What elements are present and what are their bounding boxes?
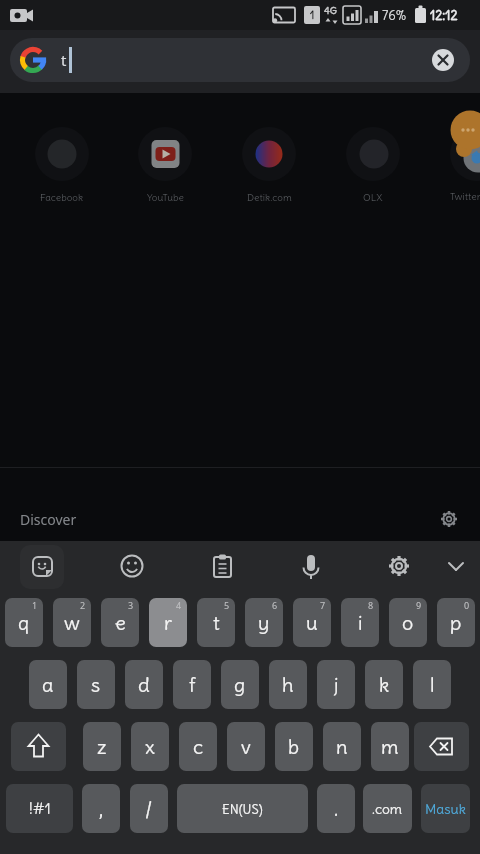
staticText: EN(US) <box>222 801 263 817</box>
staticText: YouTube <box>147 191 184 204</box>
staticText: u <box>306 610 318 635</box>
staticText: j <box>334 672 339 697</box>
staticText: k <box>379 672 390 697</box>
button[interactable] <box>112 547 152 587</box>
button[interactable]: a <box>29 660 67 709</box>
staticText: , <box>99 796 104 821</box>
staticText: 8 <box>368 599 374 611</box>
staticText: b <box>288 734 300 759</box>
staticText: 4G <box>324 4 337 17</box>
button[interactable] <box>291 547 331 587</box>
staticText: Detik.com <box>247 191 292 204</box>
button[interactable] <box>436 547 476 587</box>
button[interactable]: !#1 <box>6 784 73 833</box>
button[interactable]: q <box>5 598 43 647</box>
button[interactable]: l <box>413 660 451 709</box>
staticText: t <box>213 610 220 635</box>
staticText: a <box>42 672 54 697</box>
button[interactable]: y <box>245 598 283 647</box>
button[interactable]: EN(US) <box>177 784 308 833</box>
button[interactable]: b <box>275 722 313 771</box>
staticText: w <box>64 610 80 635</box>
button[interactable]: . <box>317 784 355 833</box>
button[interactable]: d <box>125 660 163 709</box>
staticText: m <box>381 734 399 759</box>
button[interactable]: r <box>149 598 187 647</box>
staticText: . <box>334 796 339 821</box>
button[interactable]: j <box>317 660 355 709</box>
staticText: n <box>336 734 348 759</box>
button[interactable]: Masuk <box>421 784 470 833</box>
staticText: / <box>145 796 153 821</box>
button[interactable]: m <box>371 722 409 771</box>
button[interactable]: c <box>179 722 217 771</box>
button[interactable]: k <box>365 660 403 709</box>
button[interactable]: f <box>173 660 211 709</box>
staticText: 12:12 <box>430 7 458 23</box>
staticText: 9 <box>416 599 422 611</box>
staticText: g <box>234 672 246 697</box>
button[interactable]: w <box>53 598 91 647</box>
button[interactable] <box>431 48 455 72</box>
staticText: d <box>264 144 274 164</box>
staticText: s <box>91 672 101 697</box>
staticText: e <box>115 610 126 635</box>
staticText: d <box>138 672 150 697</box>
button[interactable]: x <box>131 722 169 771</box>
staticText: t <box>61 50 67 70</box>
button[interactable]: o <box>389 598 427 647</box>
staticText: y <box>258 610 270 635</box>
staticText: o <box>402 610 414 635</box>
button[interactable]: .com <box>363 784 412 833</box>
button[interactable] <box>343 124 403 208</box>
button[interactable] <box>379 547 419 587</box>
button[interactable] <box>11 722 66 771</box>
button[interactable]: i <box>341 598 379 647</box>
staticText: r <box>164 610 173 635</box>
staticText: 3 <box>128 599 134 611</box>
staticText: 1 <box>310 8 315 22</box>
button[interactable]: u <box>293 598 331 647</box>
staticText: h <box>282 672 294 697</box>
staticText: .com <box>372 800 403 818</box>
staticText: i <box>358 610 363 635</box>
staticText: x <box>145 734 155 759</box>
button[interactable]: p <box>437 598 475 647</box>
staticText: 5 <box>224 599 230 611</box>
button[interactable] <box>414 722 469 771</box>
staticText: q <box>18 610 30 635</box>
staticText: 1 <box>32 599 38 611</box>
button[interactable] <box>22 547 62 587</box>
staticText: v <box>241 734 251 759</box>
button[interactable]: / <box>130 784 168 833</box>
button[interactable]: e <box>101 598 139 647</box>
button[interactable] <box>239 124 299 208</box>
button[interactable]: z <box>83 722 121 771</box>
staticText: Twitter <box>450 190 480 203</box>
staticText: l <box>430 672 435 697</box>
button[interactable]: v <box>227 722 265 771</box>
staticText: 4 <box>176 599 182 611</box>
button[interactable] <box>447 124 480 208</box>
staticText: p <box>450 610 462 635</box>
button[interactable]: n <box>323 722 361 771</box>
staticText: 6 <box>272 599 278 611</box>
button[interactable] <box>437 507 461 531</box>
staticText: Masuk <box>425 800 466 818</box>
button[interactable] <box>135 124 195 208</box>
button[interactable]: s <box>77 660 115 709</box>
button[interactable] <box>32 124 92 208</box>
staticText: c <box>193 734 204 759</box>
button[interactable]: h <box>269 660 307 709</box>
button[interactable]: g <box>221 660 259 709</box>
staticText: Discover <box>20 510 77 529</box>
staticText: 7 <box>320 599 326 611</box>
button[interactable] <box>10 38 470 82</box>
button[interactable] <box>202 547 242 587</box>
button[interactable]: , <box>82 784 120 833</box>
staticText: 76% <box>382 7 407 23</box>
staticText: 2 <box>80 599 86 611</box>
button[interactable]: t <box>197 598 235 647</box>
